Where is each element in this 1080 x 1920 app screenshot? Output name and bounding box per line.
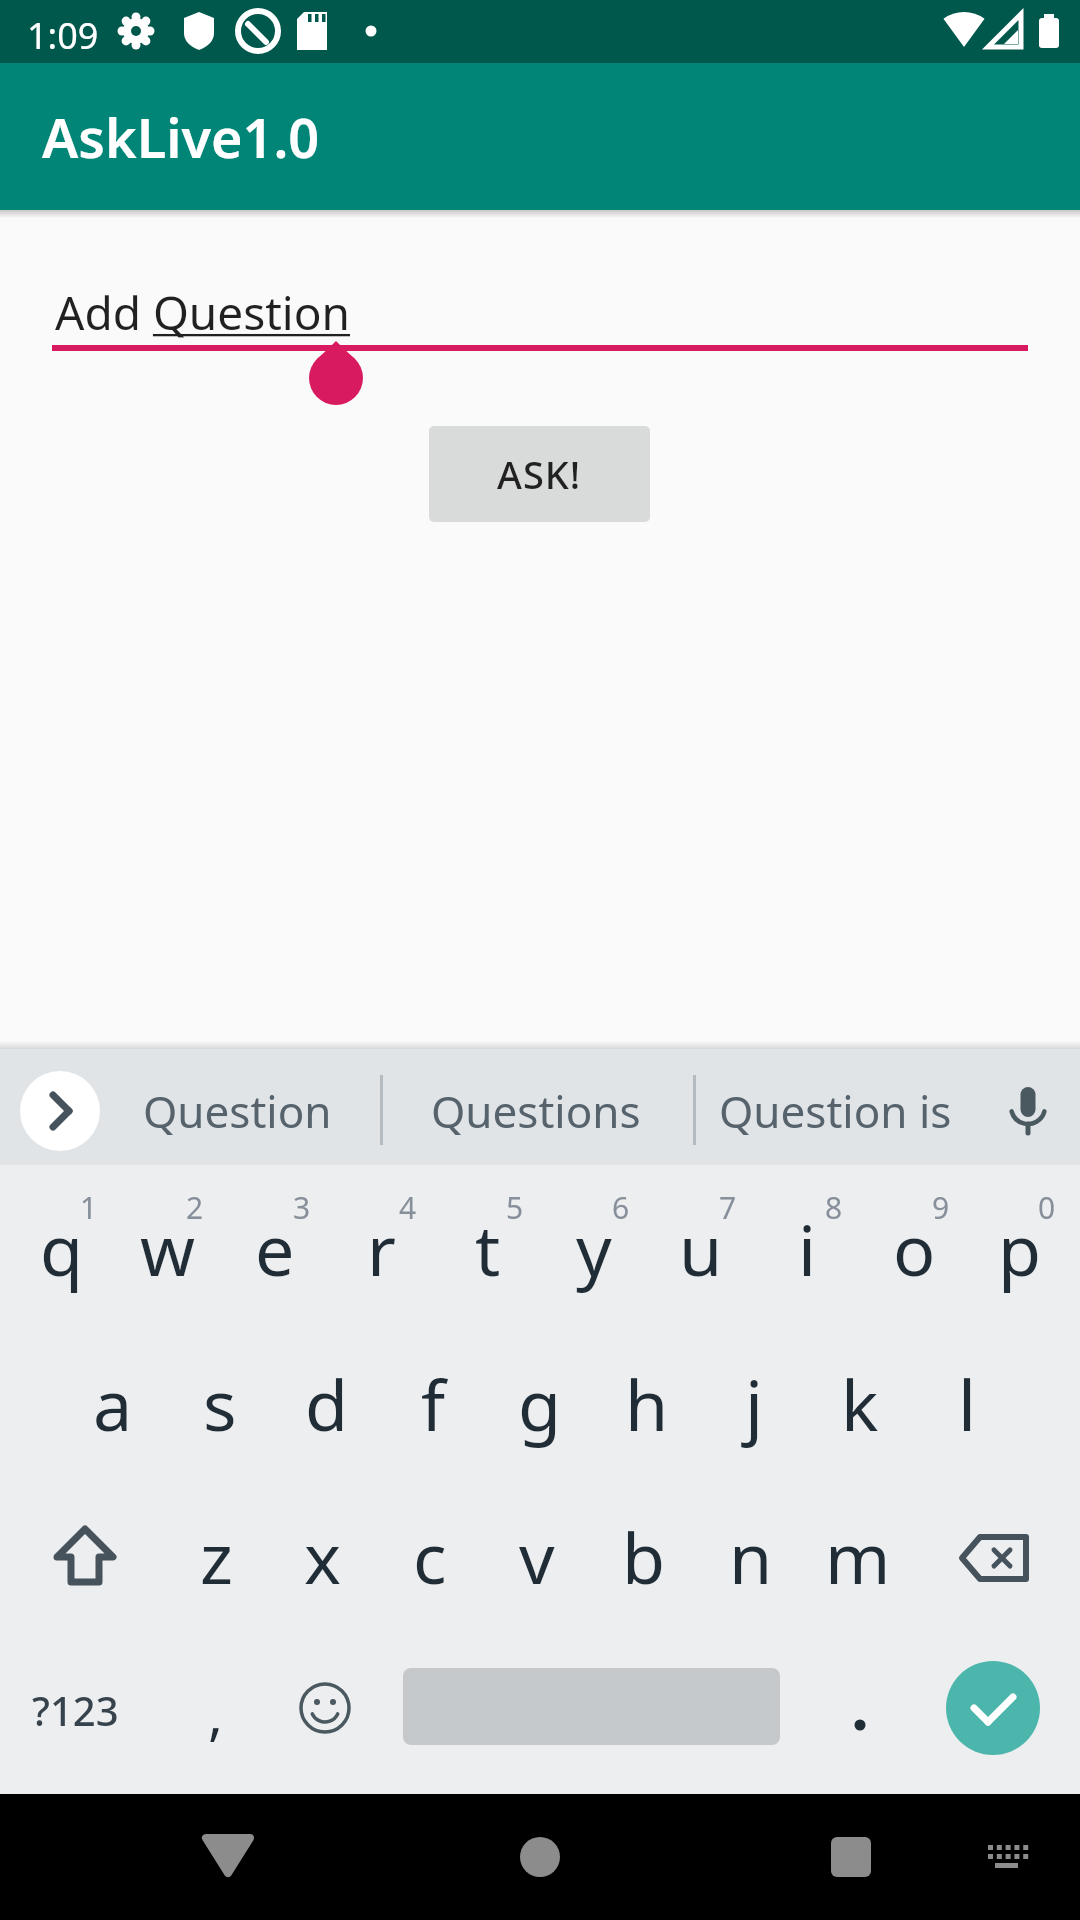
staticText: e (255, 1201, 295, 1296)
button[interactable]: y (541, 1171, 647, 1325)
staticText: y (576, 1201, 612, 1296)
staticText: 2 (186, 1187, 204, 1228)
staticText: z (200, 1509, 233, 1604)
staticText: c (413, 1509, 447, 1604)
staticText: ASK! (497, 448, 582, 500)
staticText: q (40, 1201, 84, 1296)
staticText: f (421, 1356, 446, 1451)
button[interactable] (55, 1527, 115, 1585)
button[interactable]: s (167, 1326, 273, 1480)
staticText: t (475, 1201, 501, 1296)
staticText: n (729, 1509, 773, 1604)
button[interactable]: a (60, 1326, 166, 1480)
button[interactable]: ?123 (32, 1683, 119, 1737)
button[interactable]: j (701, 1326, 807, 1480)
staticText: g (518, 1356, 562, 1451)
button[interactable]: Question (143, 1081, 332, 1141)
button[interactable]: f (380, 1326, 486, 1480)
button[interactable] (985, 1844, 1029, 1872)
staticText: i (798, 1201, 817, 1296)
button[interactable]: d (274, 1326, 380, 1480)
button[interactable]: q (9, 1171, 115, 1325)
staticText: 6 (612, 1187, 630, 1228)
button[interactable]: r (328, 1171, 434, 1325)
staticText: Add Question (55, 281, 350, 344)
button[interactable]: o (861, 1171, 967, 1325)
staticText: x (304, 1509, 342, 1604)
staticText: 3 (293, 1187, 311, 1228)
staticText: p (998, 1201, 1042, 1296)
button[interactable]: i (754, 1171, 860, 1325)
button[interactable] (960, 1535, 1030, 1581)
staticText: Question is (719, 1081, 952, 1141)
staticText: 0 (1038, 1187, 1056, 1228)
staticText: v (519, 1509, 555, 1604)
staticText: w (140, 1201, 196, 1296)
staticText: AskLive1.0 (42, 100, 320, 174)
button[interactable] (20, 1071, 100, 1151)
staticText: ?123 (32, 1683, 119, 1737)
button[interactable]: x (270, 1479, 376, 1633)
button[interactable]: e (222, 1171, 328, 1325)
button[interactable] (198, 1827, 258, 1877)
button[interactable]: z (163, 1479, 269, 1633)
staticText: a (93, 1356, 133, 1451)
button[interactable]: ASK! (429, 426, 650, 522)
staticText: 5 (506, 1187, 524, 1228)
button[interactable]: Question is (719, 1081, 952, 1141)
staticText: k (841, 1356, 879, 1451)
button[interactable]: Add Question (55, 281, 350, 344)
staticText: r (367, 1201, 396, 1296)
button[interactable]: n (698, 1479, 804, 1633)
button[interactable]: p (967, 1171, 1073, 1325)
button[interactable] (520, 1837, 560, 1877)
button[interactable]: b (591, 1479, 697, 1633)
button[interactable]: t (435, 1171, 541, 1325)
staticText: h (625, 1356, 669, 1451)
staticText: m (825, 1509, 891, 1604)
staticText: 9 (932, 1187, 950, 1228)
button[interactable] (850, 1715, 870, 1735)
staticText: b (622, 1509, 666, 1604)
staticText: 1:09 (27, 11, 99, 60)
button[interactable]: k (807, 1326, 913, 1480)
staticText: 8 (825, 1187, 843, 1228)
button[interactable]: h (594, 1326, 700, 1480)
staticText: , (208, 1675, 224, 1751)
button[interactable]: m (805, 1479, 911, 1633)
staticText: 1 (80, 1187, 98, 1228)
button[interactable]: u (648, 1171, 754, 1325)
button[interactable]: l (914, 1326, 1020, 1480)
button[interactable]: Questions (431, 1081, 641, 1141)
staticText: l (958, 1356, 977, 1451)
button[interactable]: c (377, 1479, 483, 1633)
staticText: 4 (399, 1187, 417, 1228)
button[interactable]: w (115, 1171, 221, 1325)
staticText: d (305, 1356, 349, 1451)
button[interactable]: v (484, 1479, 590, 1633)
button[interactable] (831, 1837, 871, 1877)
button[interactable]: , (208, 1675, 224, 1751)
staticText: Question (143, 1081, 332, 1141)
staticText: s (203, 1356, 237, 1451)
button[interactable] (1008, 1087, 1048, 1137)
staticText: Questions (431, 1081, 641, 1141)
staticText: j (745, 1356, 764, 1451)
staticText: 7 (719, 1187, 737, 1228)
staticText: u (679, 1201, 723, 1296)
button[interactable] (299, 1682, 351, 1734)
button[interactable]: g (487, 1326, 593, 1480)
button[interactable] (946, 1661, 1040, 1755)
staticText: o (893, 1201, 936, 1296)
